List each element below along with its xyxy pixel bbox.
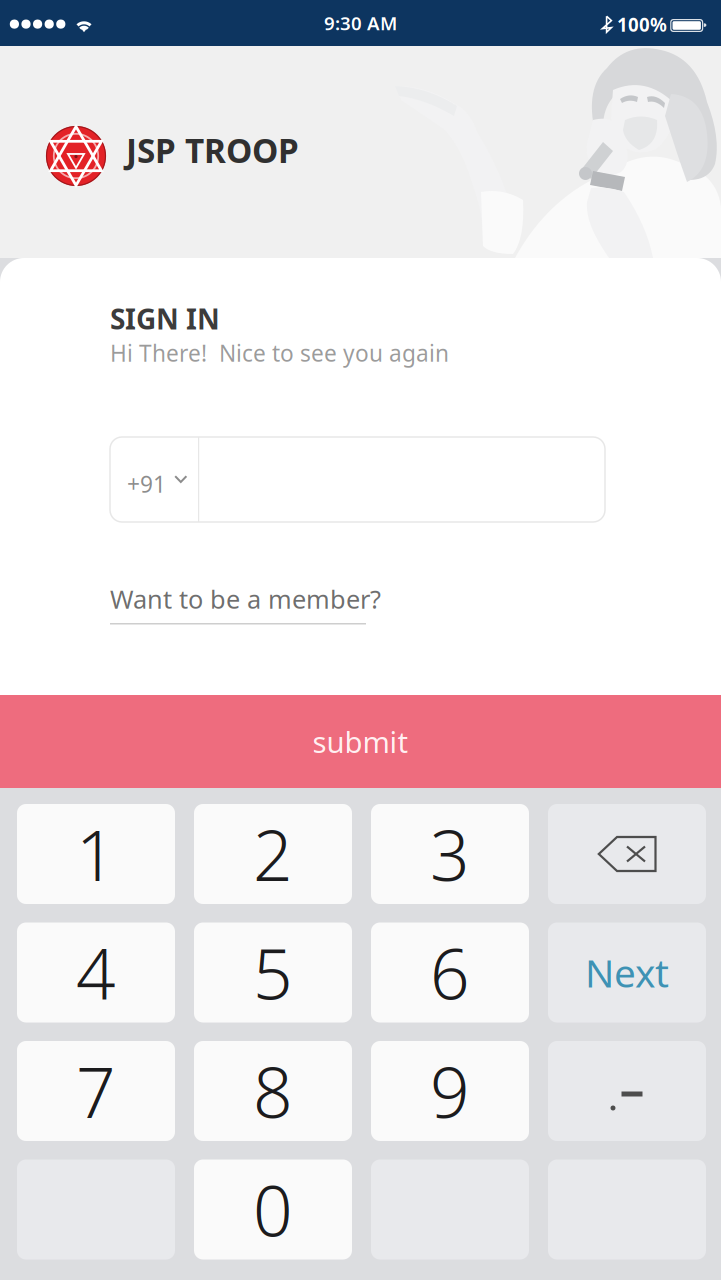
staticText: SIGN IN xyxy=(110,300,220,337)
staticText: 9:30 AM xyxy=(324,11,397,35)
button[interactable]: Next xyxy=(548,922,706,1022)
button[interactable]: 1 xyxy=(17,804,175,904)
staticText: 0 xyxy=(253,1163,293,1256)
button[interactable]: 0 xyxy=(194,1159,352,1259)
button[interactable]: 5 xyxy=(194,922,352,1022)
button[interactable]: Punctuation xyxy=(548,1041,706,1141)
button[interactable]: +91 xyxy=(110,437,605,522)
staticText: 5 xyxy=(253,926,293,1019)
staticText: 4 xyxy=(76,926,116,1019)
button[interactable]: 2 xyxy=(194,804,352,904)
staticText: +91 xyxy=(127,469,166,499)
button[interactable]: Want to be a member? xyxy=(110,582,410,624)
staticText: 3 xyxy=(430,808,470,900)
staticText: 100% xyxy=(617,12,667,37)
staticText: 9 xyxy=(430,1045,470,1137)
staticText: 7 xyxy=(76,1045,116,1137)
staticText: 2 xyxy=(253,808,293,900)
button[interactable]: 6 xyxy=(371,922,529,1022)
staticText: 8 xyxy=(253,1045,293,1137)
button[interactable]: submit xyxy=(0,695,721,788)
button[interactable]: 7 xyxy=(17,1041,175,1141)
button[interactable]: 9 xyxy=(371,1041,529,1141)
button[interactable]: Delete xyxy=(548,804,706,904)
button[interactable]: 4 xyxy=(17,922,175,1022)
staticText: JSP TROOP xyxy=(126,128,299,172)
staticText: 6 xyxy=(430,926,470,1019)
staticText: submit xyxy=(312,722,408,761)
staticText: Hi There! Nice to see you again xyxy=(110,338,449,368)
staticText: 1 xyxy=(76,808,116,900)
button[interactable]: 3 xyxy=(371,804,529,904)
staticText: Want to be a member? xyxy=(110,582,381,616)
staticText: Next xyxy=(585,947,669,998)
button[interactable]: 8 xyxy=(194,1041,352,1141)
